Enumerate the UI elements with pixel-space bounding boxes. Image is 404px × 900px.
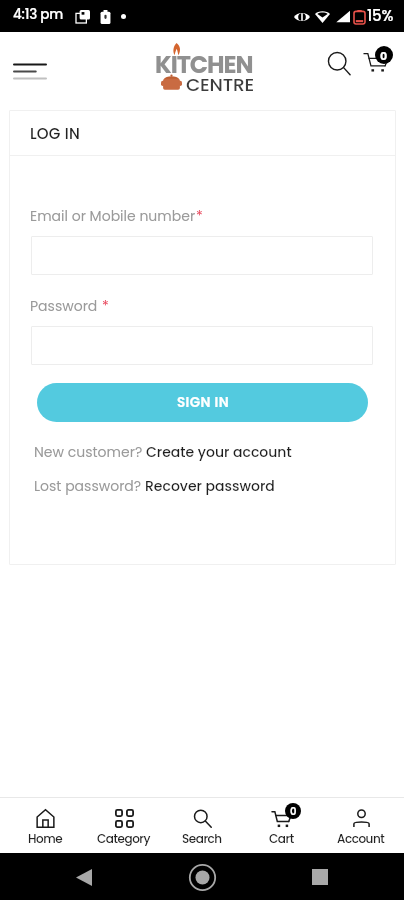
- button[interactable]: New customer?: [34, 442, 292, 462]
- staticText: Home: [28, 830, 63, 847]
- button[interactable]: Account: [323, 797, 399, 853]
- staticText: *: [196, 206, 203, 226]
- staticText: New customer?: [34, 442, 146, 462]
- staticText: Password: [30, 296, 102, 316]
- staticText: Lost password?: [34, 476, 145, 496]
- staticText: *: [102, 296, 109, 316]
- staticText: Create your account: [146, 442, 292, 462]
- button[interactable]: Search: [324, 48, 356, 80]
- button[interactable]: Home: [7, 797, 83, 853]
- button[interactable]: 0: [243, 797, 319, 853]
- button[interactable]: [31, 236, 373, 275]
- staticText: Category: [97, 830, 151, 847]
- staticText: 0: [380, 48, 388, 63]
- staticText: 0: [290, 804, 297, 818]
- staticText: CENTRE: [186, 72, 254, 98]
- staticText: SIGN IN: [177, 393, 229, 412]
- staticText: 15%: [367, 5, 394, 26]
- button[interactable]: Cart: [361, 46, 393, 78]
- button[interactable]: [31, 326, 373, 365]
- button[interactable]: SIGN IN: [37, 383, 368, 422]
- staticText: LOG IN: [30, 123, 80, 144]
- button[interactable]: Menu: [6, 49, 54, 87]
- button[interactable]: Category: [86, 797, 162, 853]
- staticText: Account: [337, 830, 385, 847]
- staticText: Recover password: [145, 476, 275, 496]
- staticText: 4:13 pm: [13, 5, 64, 24]
- staticText: Search: [182, 830, 222, 847]
- button[interactable]: Search: [164, 797, 240, 853]
- staticText: Cart: [269, 830, 294, 847]
- button[interactable]: Home: [186, 861, 218, 893]
- button[interactable]: Lost password?: [34, 476, 275, 496]
- staticText: Email or Mobile number: [30, 206, 196, 226]
- staticText: KITCHEN: [155, 48, 253, 82]
- button[interactable]: Back: [68, 861, 100, 893]
- button[interactable]: Recents: [304, 861, 336, 893]
